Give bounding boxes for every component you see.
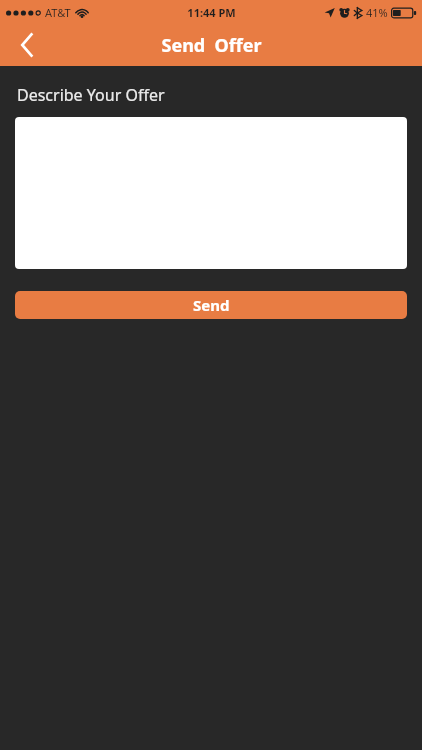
staticText: 41% xyxy=(366,5,388,20)
staticText: Send xyxy=(193,295,230,315)
button[interactable]: Back xyxy=(0,24,54,66)
staticText: Describe Your Offer xyxy=(17,84,165,106)
staticText: Send Offer xyxy=(161,33,262,58)
staticText: 11:44 PM xyxy=(187,5,236,20)
button[interactable]: Send xyxy=(15,291,407,319)
staticText: AT&T xyxy=(45,5,71,20)
